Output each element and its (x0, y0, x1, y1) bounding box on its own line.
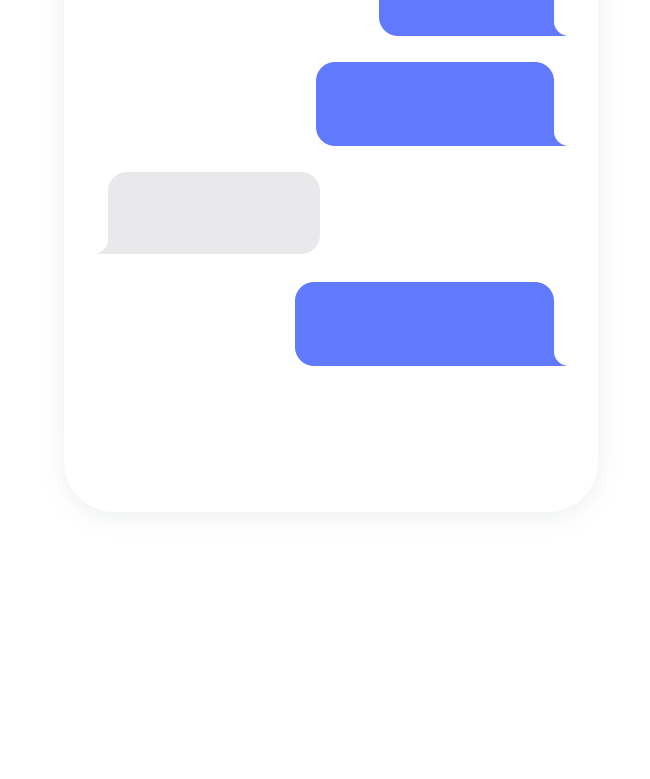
button[interactable]: Sent message (295, 282, 554, 366)
button[interactable]: Sent message (379, 0, 554, 36)
button[interactable]: Sent message (316, 62, 554, 146)
